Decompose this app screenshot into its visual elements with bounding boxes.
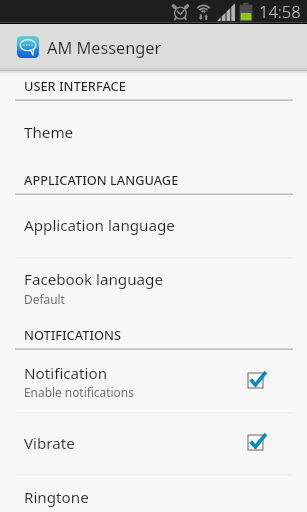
button[interactable]: Notification [0, 349, 307, 412]
button[interactable]: Facebook language [0, 257, 307, 319]
staticText: Default [24, 291, 65, 307]
button[interactable]: Toggle setting [242, 429, 270, 457]
staticText: USER INTERFACE [24, 77, 126, 94]
staticText: Application language [24, 215, 175, 236]
button[interactable]: Theme [0, 100, 307, 162]
button[interactable]: Toggle setting [242, 367, 270, 395]
staticText: Ringtone [24, 487, 89, 508]
staticText: 14:58 [259, 0, 301, 22]
staticText: Vibrate [24, 433, 75, 454]
staticText: Facebook language [24, 269, 164, 290]
staticText: APPLICATION LANGUAGE [24, 171, 179, 188]
button[interactable]: Vibrate [0, 412, 307, 474]
button[interactable]: Ringtone [0, 474, 307, 512]
button[interactable]: Application language [0, 194, 307, 258]
staticText: Theme [24, 122, 74, 143]
staticText: Enable notifications [24, 384, 134, 400]
staticText: NOTIFICATIONS [24, 326, 121, 343]
staticText: Notification [24, 363, 108, 384]
staticText: AM Messenger [47, 37, 162, 59]
